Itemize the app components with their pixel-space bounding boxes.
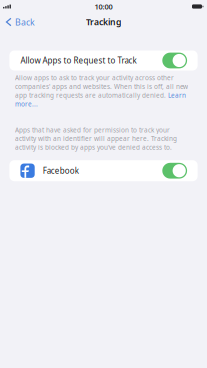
button[interactable]: Facebook [0, 160, 207, 181]
staticText: Facebook [43, 165, 79, 176]
staticText: Allow apps to ask to track your activity… [15, 73, 188, 108]
staticText: Tracking [86, 16, 121, 28]
staticText: Apps that have asked for permission to t… [15, 126, 177, 152]
staticText: 10:00 [94, 1, 112, 12]
staticText: Back [15, 16, 35, 28]
staticText: Allow Apps to Request to Track [20, 55, 136, 66]
button[interactable]: Back [0, 12, 60, 32]
button[interactable]: Allow Apps to Request to Track [0, 50, 207, 70]
